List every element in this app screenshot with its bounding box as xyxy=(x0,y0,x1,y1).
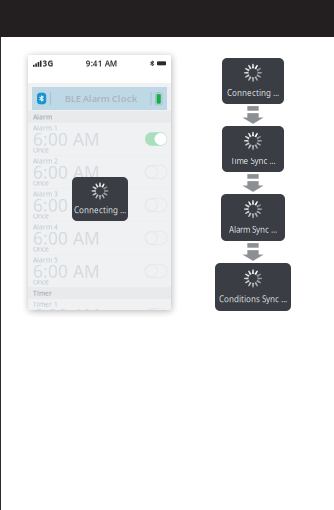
staticText: Once xyxy=(33,278,49,286)
staticText: Timer xyxy=(33,289,52,298)
staticText: Connecting ... xyxy=(227,88,279,98)
staticText: 9:41 AM xyxy=(86,58,117,69)
button[interactable]: Bluetooth xyxy=(37,93,46,104)
staticText: 6:00 AM xyxy=(33,304,100,327)
button[interactable]: Conditions Sync ... xyxy=(215,263,291,311)
staticText: Alarm 2 xyxy=(33,157,58,165)
staticText: Timer 1 xyxy=(33,300,58,309)
staticText: 6:00 AM xyxy=(33,160,100,183)
button[interactable]: Connecting ... xyxy=(222,58,284,104)
button[interactable]: Alarm Sync ... xyxy=(221,194,285,241)
staticText: 6:00 AM xyxy=(33,226,100,249)
staticText: Once xyxy=(33,146,49,154)
staticText: 3G xyxy=(42,58,53,69)
button[interactable]: Alarm 4 xyxy=(28,222,171,254)
staticText: 6:00 AM xyxy=(33,127,100,150)
staticText: Once xyxy=(33,212,49,220)
staticText: Conditions Sync ... xyxy=(219,294,287,304)
staticText: Alarm Sync ... xyxy=(229,224,277,235)
staticText: Connecting ... xyxy=(74,205,126,215)
staticText: Alarm 4 xyxy=(33,223,58,231)
staticText: 6:00 AM xyxy=(33,259,100,282)
staticText: Alarm xyxy=(33,112,52,121)
button[interactable]: Alarm 2 xyxy=(28,156,171,188)
button[interactable]: Alarm 1 xyxy=(28,123,171,155)
staticText: Alarm 3 xyxy=(33,190,58,198)
button[interactable]: Time Sync ... xyxy=(222,126,284,172)
staticText: BLE Alarm Clock xyxy=(65,92,137,105)
staticText: Alarm 1 xyxy=(33,124,58,132)
staticText: Time Sync ... xyxy=(230,156,275,166)
staticText: Once xyxy=(33,179,49,187)
button[interactable]: Alarm 5 xyxy=(28,255,171,287)
button[interactable]: Connecting ... xyxy=(72,177,128,221)
button[interactable]: Alarm 3 xyxy=(28,189,171,221)
staticText: Once xyxy=(33,245,49,253)
staticText: 6:00 AM xyxy=(33,193,100,216)
button[interactable]: Timer 1 xyxy=(28,299,171,331)
staticText: Alarm 5 xyxy=(33,256,58,264)
